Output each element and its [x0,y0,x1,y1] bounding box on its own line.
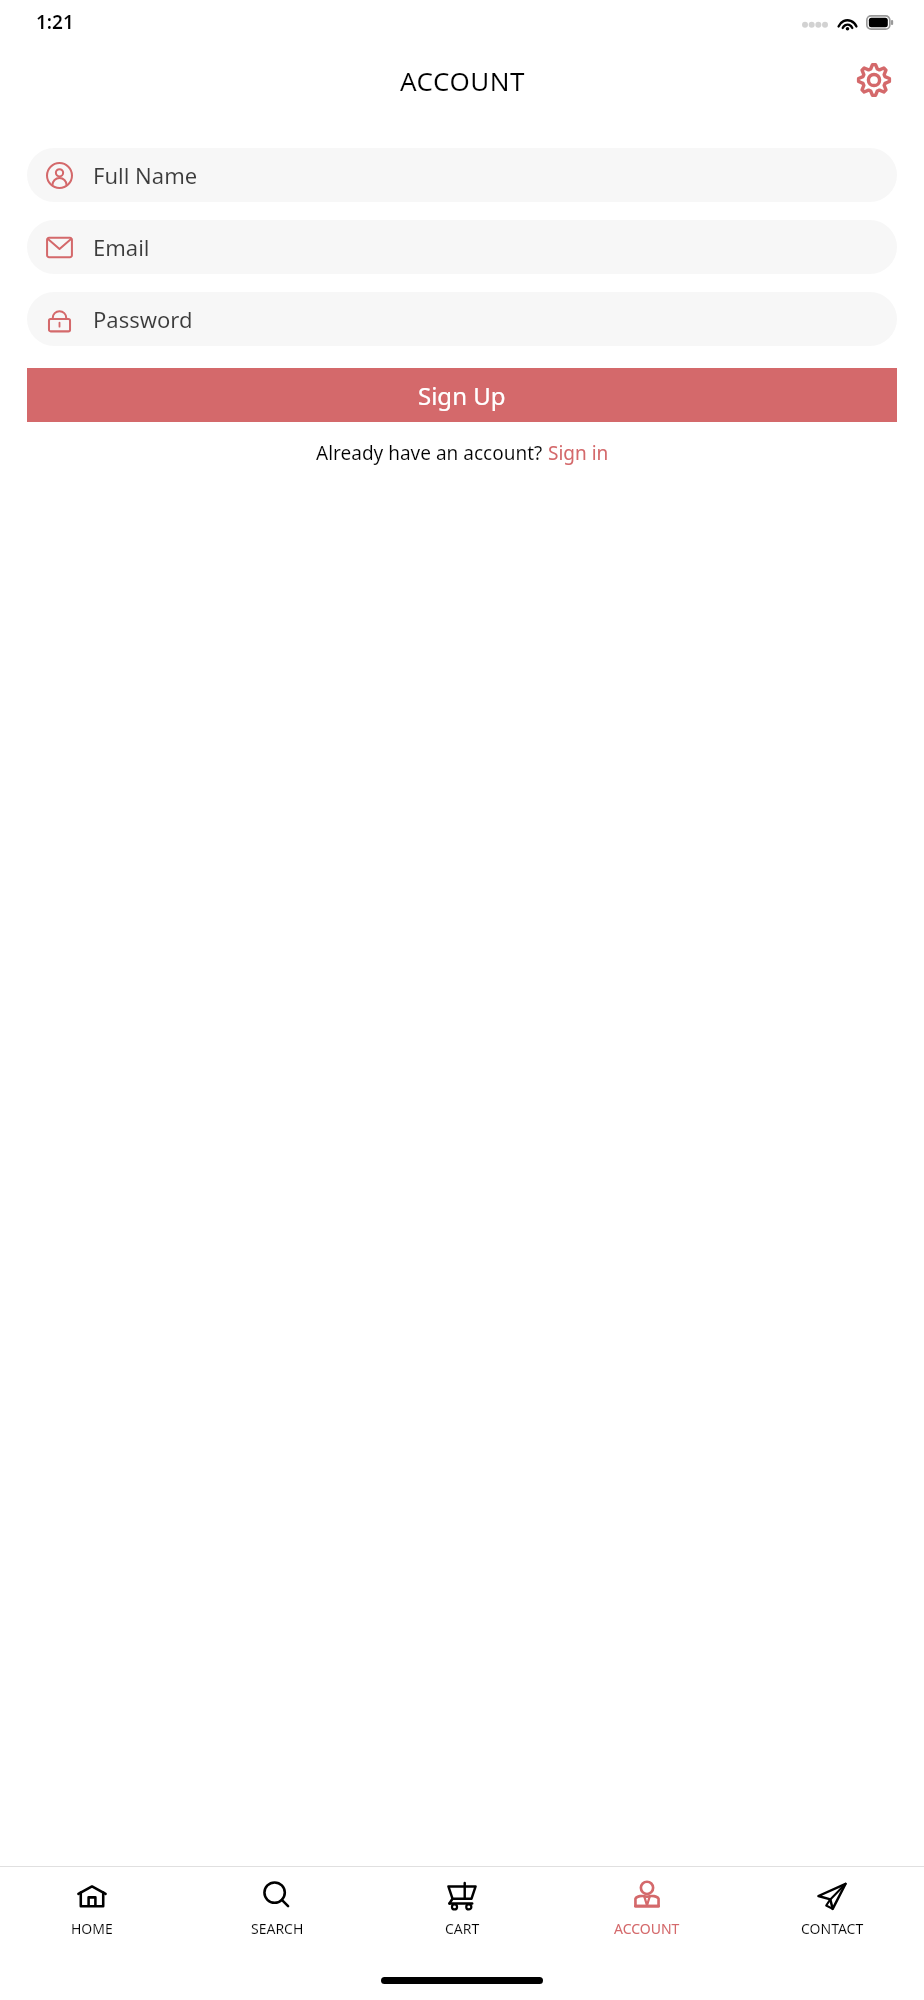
button[interactable]: Email [27,220,897,274]
button[interactable]: SEARCH [207,1877,347,1938]
button[interactable]: ACCOUNT [577,1877,717,1938]
staticText: Sign Up [418,379,506,412]
button[interactable]: Sign in [548,440,609,466]
staticText: Email [93,232,150,262]
button[interactable]: Settings [848,54,900,106]
button[interactable]: HOME [22,1877,162,1938]
staticText: ACCOUNT [614,1919,680,1938]
staticText: Password [93,304,193,334]
button[interactable]: Sign Up [27,368,897,422]
staticText: SEARCH [251,1919,304,1938]
staticText: Full Name [93,160,198,190]
button[interactable]: CONTACT [762,1877,902,1938]
button[interactable]: Password [27,292,897,346]
staticText: HOME [71,1919,113,1938]
staticText: Already have an account? [316,440,548,466]
button[interactable]: CART [392,1877,532,1938]
staticText: Sign in [548,440,609,466]
staticText: 1:21 [36,9,74,35]
button[interactable]: Full Name [27,148,897,202]
staticText: CONTACT [801,1919,864,1938]
staticText: ACCOUNT [400,63,525,98]
staticText: CART [445,1919,480,1938]
